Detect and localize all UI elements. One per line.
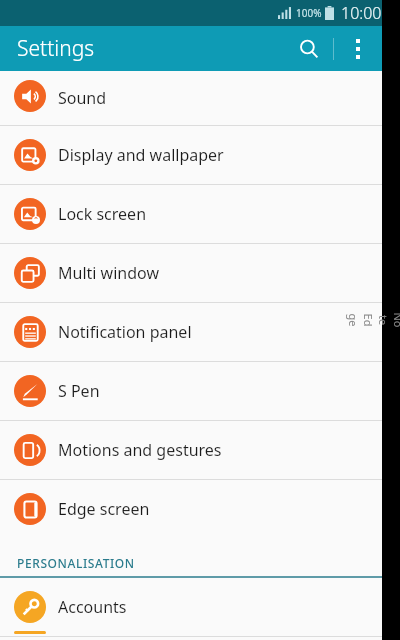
button[interactable]: Edge screen [0,480,400,538]
button[interactable]: Search [285,26,333,71]
staticText: Sound [58,87,107,109]
staticText: Display and wallpaper [58,144,224,166]
staticText: Lock screen [58,203,147,225]
button[interactable]: Motions and gestures [0,421,400,479]
staticText: Notification panel [58,321,192,343]
staticText: Motions and gestures [58,439,222,461]
staticText: Accounts [58,596,127,618]
button[interactable]: Accounts [0,578,400,636]
button[interactable]: Display and wallpaper [0,126,400,184]
staticText: Multi window [58,262,159,284]
staticText: Galaxy Note Edge [346,311,400,329]
button[interactable]: Sound [0,71,400,125]
button[interactable]: Lock screen [0,185,400,243]
button[interactable]: Multi window [0,244,400,302]
staticText: Edge screen [58,498,150,520]
staticText: 10:00 [341,2,382,24]
button[interactable]: Notification panel [0,303,400,361]
button[interactable]: S Pen [0,362,400,420]
staticText: PERSONALISATION [17,555,135,571]
staticText: 100% [296,6,322,20]
staticText: Settings [17,34,95,63]
button[interactable]: More options [334,26,382,71]
staticText: S Pen [58,380,100,402]
